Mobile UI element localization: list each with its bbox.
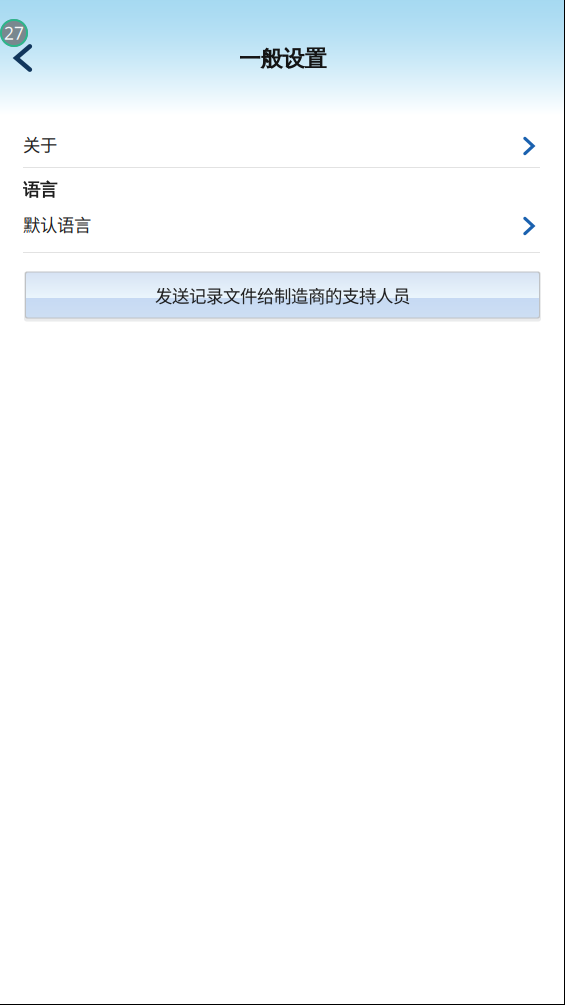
staticText: 默认语言	[23, 211, 91, 237]
staticText: 发送记录文件给制造商的支持人员	[155, 282, 410, 308]
button[interactable]: 发送记录文件给制造商的支持人员	[0, 272, 565, 318]
button[interactable]: 默认语言	[0, 211, 565, 252]
staticText: 27	[4, 21, 24, 45]
button[interactable]: Back	[0, 34, 47, 82]
staticText: 语言	[23, 179, 57, 201]
button[interactable]: 关于	[0, 116, 565, 167]
staticText: 一般设置	[238, 45, 326, 73]
staticText: 关于	[23, 131, 57, 157]
